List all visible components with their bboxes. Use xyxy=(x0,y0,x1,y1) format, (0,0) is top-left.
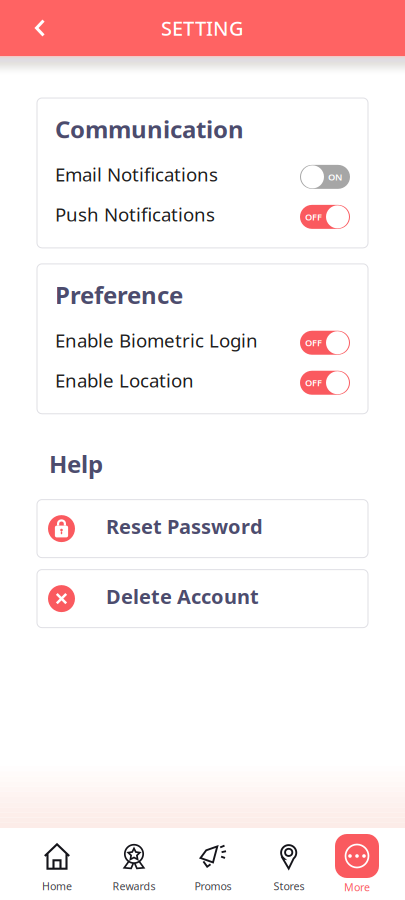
staticText: SETTING xyxy=(161,15,244,41)
button[interactable]: Enable Location xyxy=(37,363,368,403)
staticText: Promos xyxy=(194,879,231,893)
button[interactable]: Delete Account xyxy=(37,570,368,628)
staticText: Home xyxy=(42,879,72,893)
staticText: Help xyxy=(49,448,103,480)
button[interactable]: Home xyxy=(27,828,87,900)
staticText: Rewards xyxy=(112,879,155,893)
staticText: More xyxy=(344,880,370,894)
staticText: ON xyxy=(328,171,342,183)
staticText: Push Notifications xyxy=(55,202,215,227)
staticText: OFF xyxy=(305,336,322,349)
staticText: Delete Account xyxy=(106,583,259,609)
staticText: Enable Biometric Login xyxy=(55,328,258,353)
staticText: OFF xyxy=(305,211,322,223)
button[interactable]: Push Notifications xyxy=(37,197,368,237)
staticText: Reset Password xyxy=(106,513,263,539)
staticText: Email Notifications xyxy=(55,162,218,187)
button[interactable]: More xyxy=(327,828,387,900)
staticText: Preference xyxy=(55,279,183,311)
button[interactable]: Enable Biometric Login xyxy=(37,323,368,363)
staticText: Enable Location xyxy=(55,368,194,393)
button[interactable]: Reset Password xyxy=(37,500,368,558)
staticText: OFF xyxy=(305,376,322,389)
button[interactable]: Rewards xyxy=(104,828,164,900)
staticText: Communication xyxy=(55,113,244,145)
staticText: Stores xyxy=(273,879,304,893)
button[interactable]: Promos xyxy=(183,828,243,900)
button[interactable]: Back xyxy=(18,6,62,50)
button[interactable]: Email Notifications xyxy=(37,157,368,197)
button[interactable]: Stores xyxy=(259,828,319,900)
